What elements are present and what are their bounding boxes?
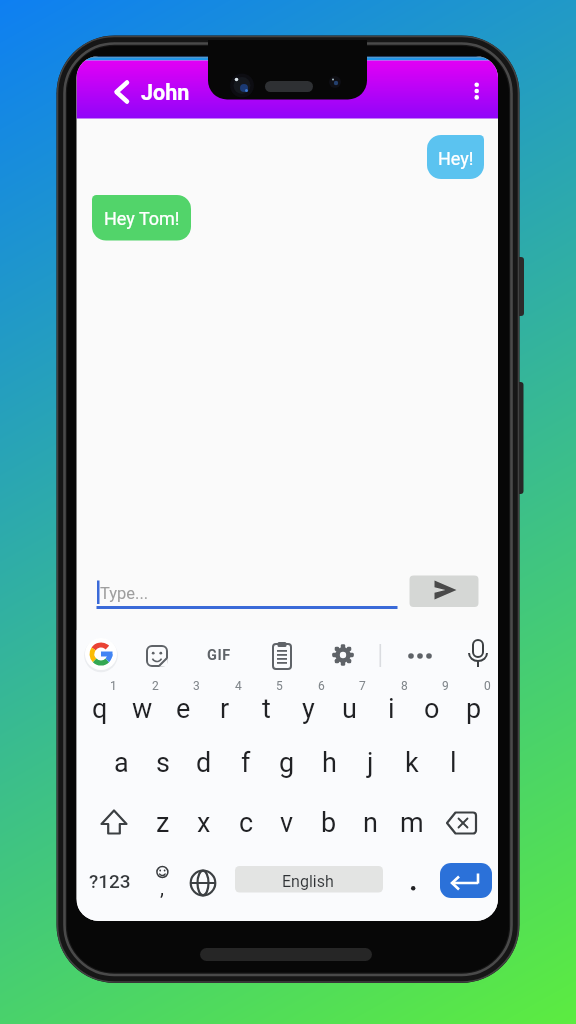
staticText: s <box>156 747 170 779</box>
button[interactable]: o <box>411 683 453 735</box>
staticText: 8 <box>401 679 408 693</box>
staticText: 3 <box>193 679 200 693</box>
staticText: 5 <box>276 679 283 693</box>
staticText: 6 <box>318 679 325 693</box>
staticText: l <box>450 747 457 779</box>
button[interactable]: h <box>308 737 350 789</box>
button[interactable]: m <box>391 797 433 849</box>
button[interactable]: e <box>162 683 204 735</box>
staticText: Hey Tom! <box>104 208 180 229</box>
staticText: z <box>156 807 170 839</box>
staticText: ?123 <box>89 870 131 892</box>
staticText: x <box>197 807 211 839</box>
staticText: j <box>367 747 374 779</box>
staticText: John <box>141 80 190 105</box>
button[interactable] <box>199 634 239 676</box>
staticText: c <box>239 807 254 839</box>
staticText: 4 <box>235 679 242 693</box>
button[interactable] <box>401 634 439 676</box>
staticText: t <box>262 693 271 725</box>
button[interactable]: k <box>391 737 433 789</box>
button[interactable] <box>459 634 497 676</box>
button[interactable] <box>138 634 176 676</box>
staticText: , <box>160 876 164 899</box>
staticText: y <box>302 693 315 725</box>
staticText: k <box>405 747 419 779</box>
staticText: o <box>424 693 440 725</box>
button[interactable] <box>440 863 492 898</box>
button[interactable]: p <box>453 683 495 735</box>
staticText: p <box>466 693 482 725</box>
button[interactable]: u <box>328 683 370 735</box>
staticText: 7 <box>359 679 366 693</box>
staticText: w <box>132 693 153 725</box>
button[interactable]: j <box>349 737 391 789</box>
button[interactable]: r <box>204 683 246 735</box>
button[interactable]: c <box>225 797 267 849</box>
staticText: v <box>280 807 294 839</box>
staticText: Type... <box>100 584 149 603</box>
button[interactable]: b <box>308 797 350 849</box>
button[interactable]: y <box>287 683 329 735</box>
button[interactable]: g <box>266 737 308 789</box>
button[interactable]: a <box>100 737 142 789</box>
staticText: Hey! <box>438 148 474 169</box>
staticText: n <box>363 807 378 839</box>
staticText: b <box>321 807 337 839</box>
button[interactable]: n <box>349 797 391 849</box>
staticText: d <box>196 747 212 779</box>
staticText: 9 <box>442 679 449 693</box>
button[interactable]: t <box>245 683 287 735</box>
button[interactable] <box>410 576 476 608</box>
button[interactable] <box>94 798 134 848</box>
button[interactable] <box>183 860 223 906</box>
staticText: h <box>322 747 337 779</box>
button[interactable]: x <box>183 797 225 849</box>
button[interactable] <box>324 634 362 676</box>
button[interactable] <box>96 570 398 614</box>
button[interactable] <box>441 798 481 848</box>
button[interactable]: z <box>142 797 184 849</box>
staticText: 0 <box>484 679 491 693</box>
button[interactable]: f <box>225 737 267 789</box>
button[interactable]: w <box>121 683 163 735</box>
button[interactable] <box>262 634 300 676</box>
staticText: r <box>220 693 230 725</box>
staticText: e <box>176 693 191 725</box>
staticText: f <box>241 747 251 779</box>
button[interactable]: d <box>183 737 225 789</box>
button[interactable]: l <box>432 737 474 789</box>
staticText: i <box>388 693 395 725</box>
staticText: 1 <box>110 679 117 693</box>
button[interactable] <box>95 70 135 114</box>
staticText: English <box>282 872 334 891</box>
staticText: GIF <box>207 647 231 664</box>
staticText: q <box>92 693 108 725</box>
staticText: 2 <box>152 679 159 693</box>
button[interactable] <box>234 869 381 895</box>
staticText: u <box>342 693 357 725</box>
button[interactable]: i <box>370 683 412 735</box>
staticText: g <box>279 747 295 779</box>
button[interactable]: q <box>79 683 121 735</box>
button[interactable]: v <box>266 797 308 849</box>
staticText: m <box>400 807 424 839</box>
staticText: a <box>114 747 129 779</box>
button[interactable] <box>83 634 121 676</box>
button[interactable]: s <box>142 737 184 789</box>
button[interactable] <box>458 70 496 114</box>
